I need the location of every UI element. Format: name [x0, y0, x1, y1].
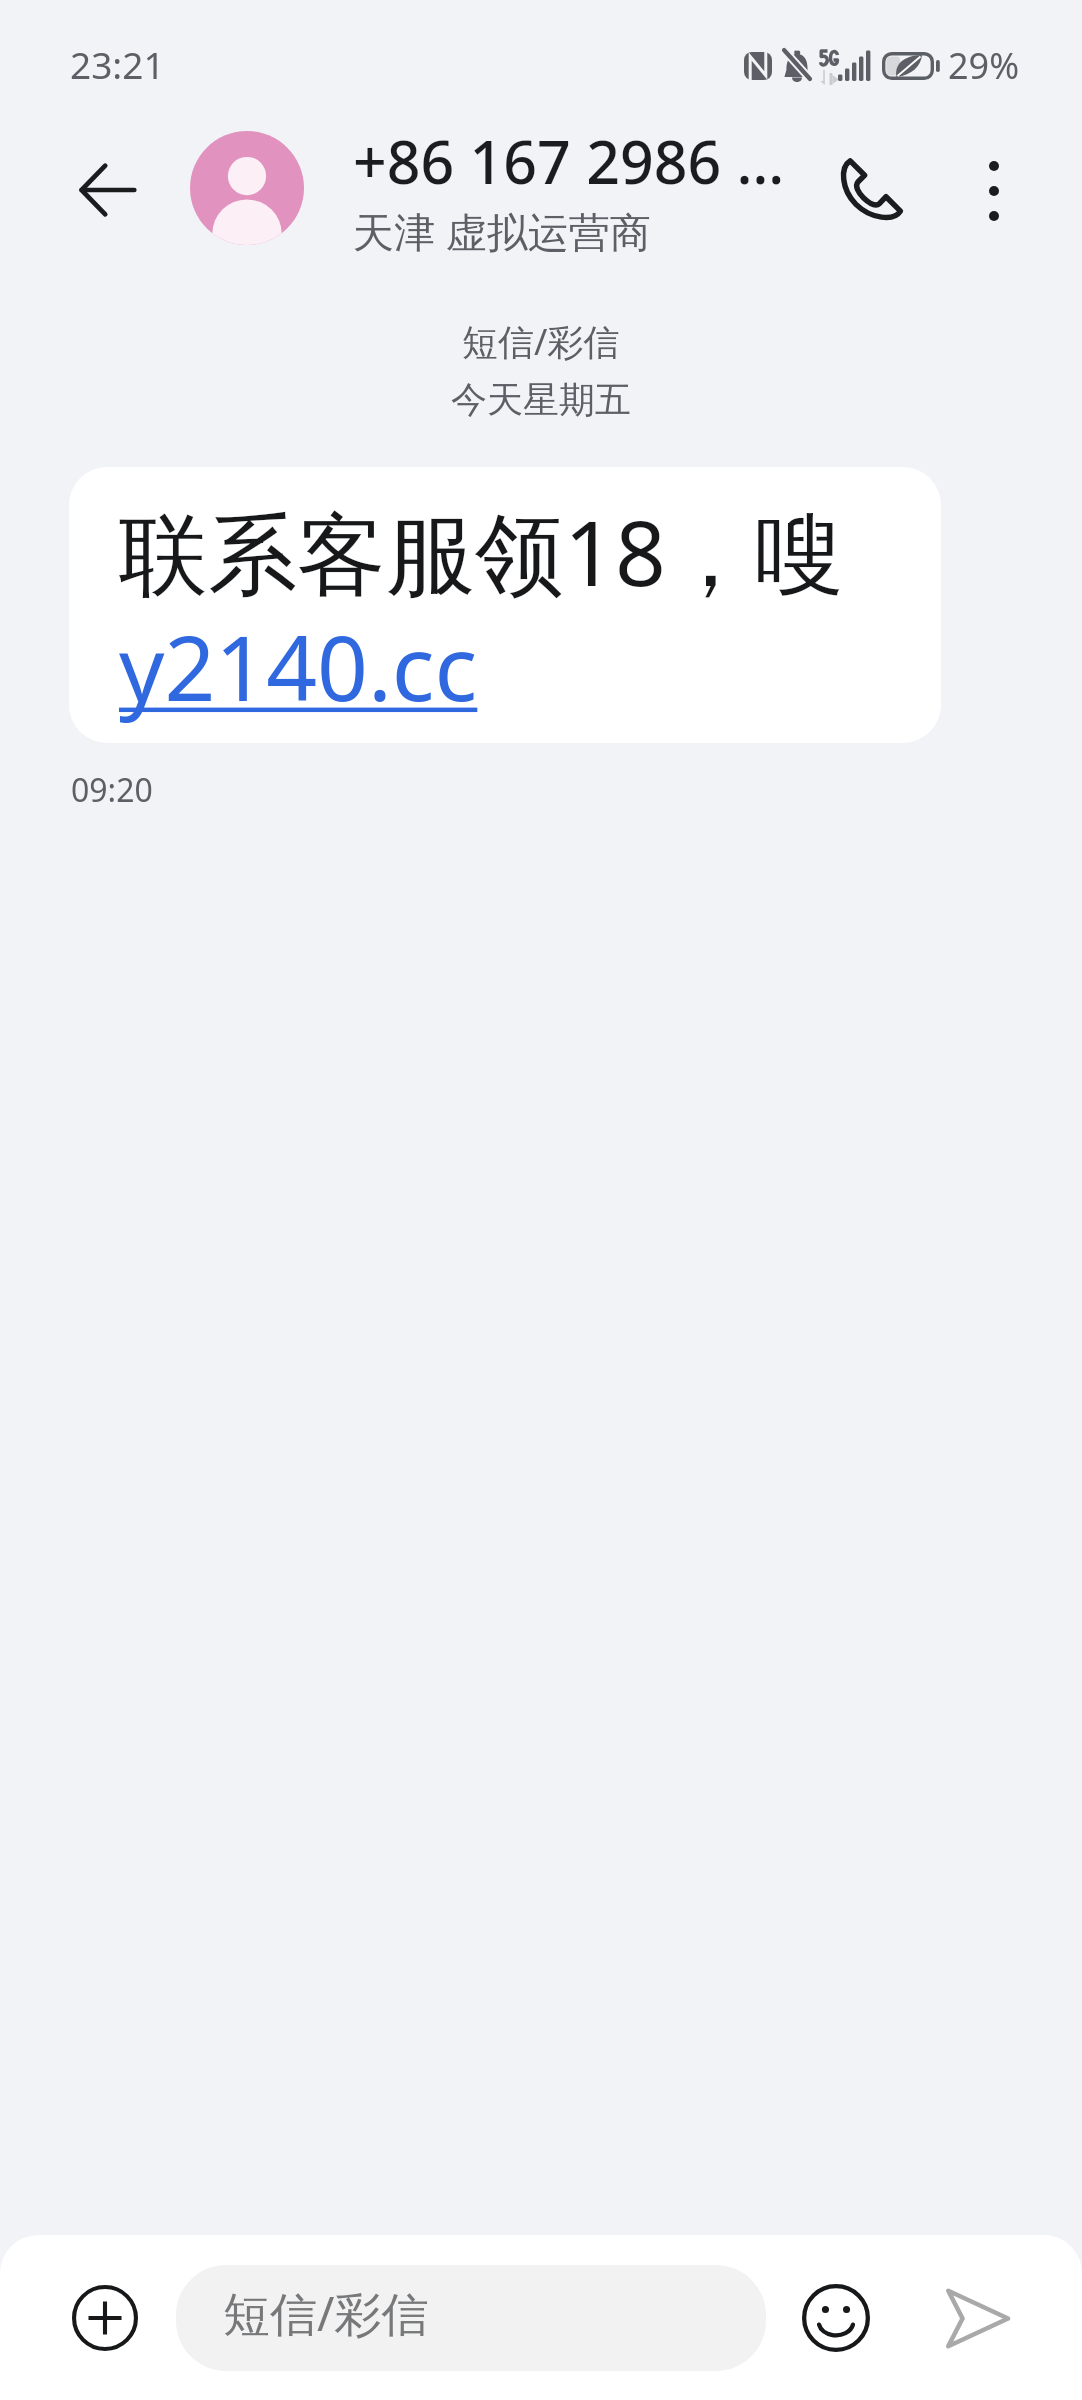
button[interactable]: Back — [51, 134, 163, 246]
staticText: y2140.cc — [119, 606, 478, 727]
button[interactable]: Call — [815, 134, 927, 246]
button[interactable]: 短信/彩信 — [176, 2265, 766, 2371]
staticText: 29% — [948, 41, 1020, 90]
staticText: 短信/彩信 — [462, 317, 620, 366]
staticText: +86 167 2986 … — [353, 121, 785, 201]
staticText: 23:21 — [70, 39, 165, 89]
button[interactable]: 联系客服领18，嗖 — [69, 467, 941, 743]
staticText: 天津 虚拟运营商 — [353, 203, 651, 259]
button[interactable]: Add attachment — [62, 2275, 148, 2361]
staticText: 09:20 — [71, 768, 153, 812]
button[interactable]: More options — [938, 135, 1050, 247]
staticText: 短信/彩信 — [223, 2281, 429, 2345]
staticText: 联系客服领18，嗖 — [119, 491, 844, 613]
staticText: 今天星期五 — [451, 377, 631, 422]
button[interactable]: Contact photo — [190, 131, 304, 245]
button[interactable]: Emoji — [793, 2275, 879, 2361]
button[interactable]: Send — [934, 2275, 1020, 2361]
